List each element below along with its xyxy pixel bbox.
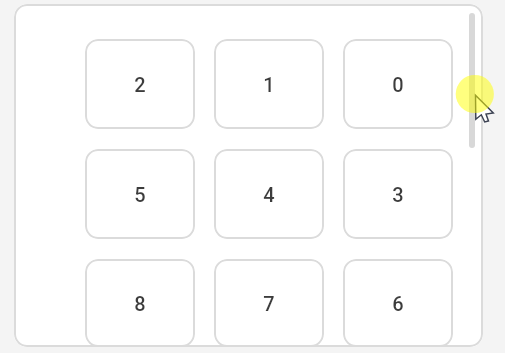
staticText: 2	[134, 73, 146, 96]
button[interactable]: 1	[214, 39, 324, 129]
button[interactable]: 0	[343, 39, 453, 129]
staticText: 8	[134, 292, 146, 315]
staticText: 1	[263, 73, 275, 96]
button[interactable]: 8	[85, 259, 195, 347]
button[interactable]: 7	[214, 259, 324, 347]
staticText: 3	[392, 183, 404, 206]
staticText: 0	[392, 73, 404, 96]
button[interactable]: 3	[343, 149, 453, 239]
button[interactable]: 5	[85, 149, 195, 239]
staticText: 7	[263, 292, 275, 315]
button[interactable]: 2	[85, 39, 195, 129]
staticText: 5	[134, 183, 146, 206]
button[interactable]: 6	[343, 259, 453, 347]
button[interactable]: 4	[214, 149, 324, 239]
staticText: 6	[392, 292, 404, 315]
staticText: 4	[263, 183, 275, 206]
